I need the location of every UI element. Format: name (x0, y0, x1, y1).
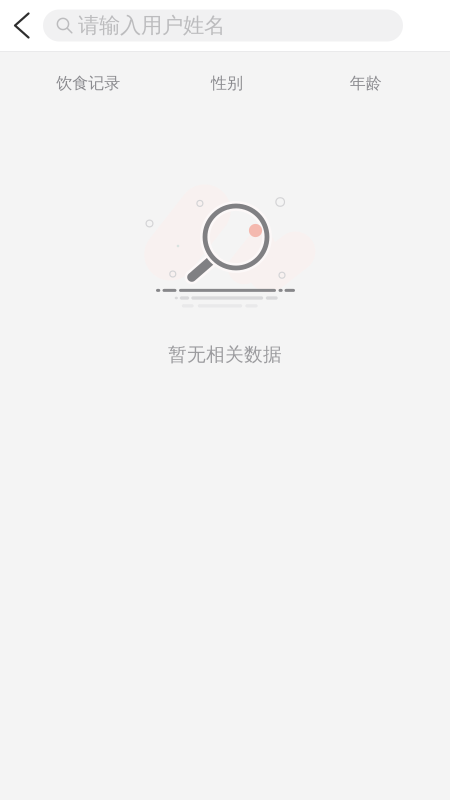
staticText: 请输入用户姓名 (78, 12, 225, 39)
button[interactable]: 性别 (158, 52, 296, 106)
staticText: 暂无相关数据 (168, 343, 282, 366)
button[interactable]: 饮食记录 (19, 52, 158, 106)
button[interactable]: 请输入用户姓名 (43, 9, 403, 41)
button[interactable]: 年龄 (296, 52, 435, 106)
staticText: 性别 (211, 73, 243, 93)
staticText: 饮食记录 (56, 73, 120, 93)
button[interactable]: Back (1, 0, 43, 51)
staticText: 年龄 (350, 73, 382, 93)
